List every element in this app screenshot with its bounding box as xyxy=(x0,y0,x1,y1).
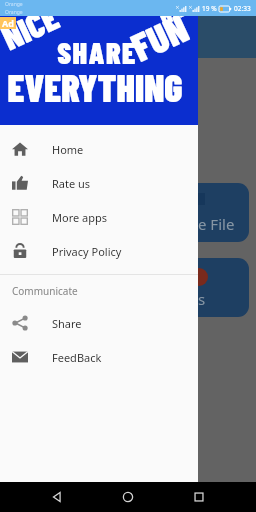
button[interactable]: FeedBack xyxy=(0,340,198,374)
button[interactable]: Rate us xyxy=(0,166,198,200)
staticText: EVERYTHING xyxy=(0,64,194,110)
staticText: Home xyxy=(52,142,84,157)
button[interactable]: Back xyxy=(46,486,68,508)
staticText: HAVE xyxy=(154,0,206,30)
staticText: NICE xyxy=(0,0,65,57)
staticText: Ad xyxy=(2,17,14,29)
button[interactable]: Share xyxy=(0,306,198,340)
staticText: Privacy Policy xyxy=(52,244,122,259)
staticText: SHARE xyxy=(0,34,196,70)
staticText: FeedBack xyxy=(52,350,102,365)
staticText: More apps xyxy=(52,210,107,225)
staticText: 02:33 xyxy=(234,4,251,13)
staticText: 19 % xyxy=(202,4,217,13)
button[interactable]: Home xyxy=(0,132,198,166)
button[interactable]: NICE xyxy=(0,16,198,125)
button[interactable]: Privacy Policy xyxy=(0,234,198,268)
staticText: FUN xyxy=(124,3,195,70)
staticText: e File xyxy=(198,214,235,234)
staticText: Orange xyxy=(5,9,23,16)
button[interactable]: e File xyxy=(7,183,249,242)
staticText: Share xyxy=(52,316,82,331)
staticText: Communicate xyxy=(12,284,78,298)
button[interactable]: More apps xyxy=(0,200,198,234)
staticText: Rate us xyxy=(52,176,91,191)
staticText: s xyxy=(198,289,206,309)
staticText: Orange xyxy=(5,1,23,8)
button[interactable]: s xyxy=(7,258,249,317)
button[interactable]: Recent apps xyxy=(188,486,210,508)
button[interactable]: Home xyxy=(117,486,139,508)
